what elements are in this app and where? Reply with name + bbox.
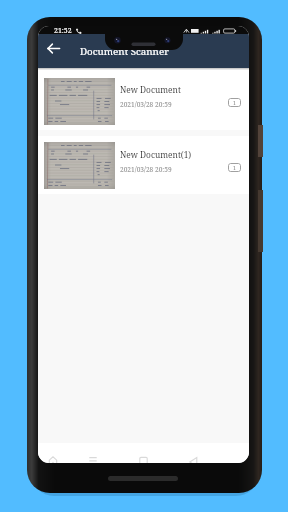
button[interactable]: 1 [228, 98, 241, 107]
button[interactable]: Back [42, 39, 64, 58]
staticText: 2021/03/28 20:59 [120, 100, 172, 109]
button[interactable]: 1 [228, 163, 241, 172]
staticText: New Document(1) [120, 149, 192, 160]
staticText: Document Scanner [80, 45, 169, 58]
staticText: 21:52 [54, 26, 72, 34]
staticText: 2021/03/28 20:59 [120, 165, 172, 174]
button[interactable]: New Document(1) [38, 136, 249, 194]
staticText: New Document [120, 84, 181, 95]
staticText: 1 [233, 99, 237, 106]
staticText: 1 [233, 164, 237, 171]
button[interactable]: New Document [38, 70, 249, 130]
